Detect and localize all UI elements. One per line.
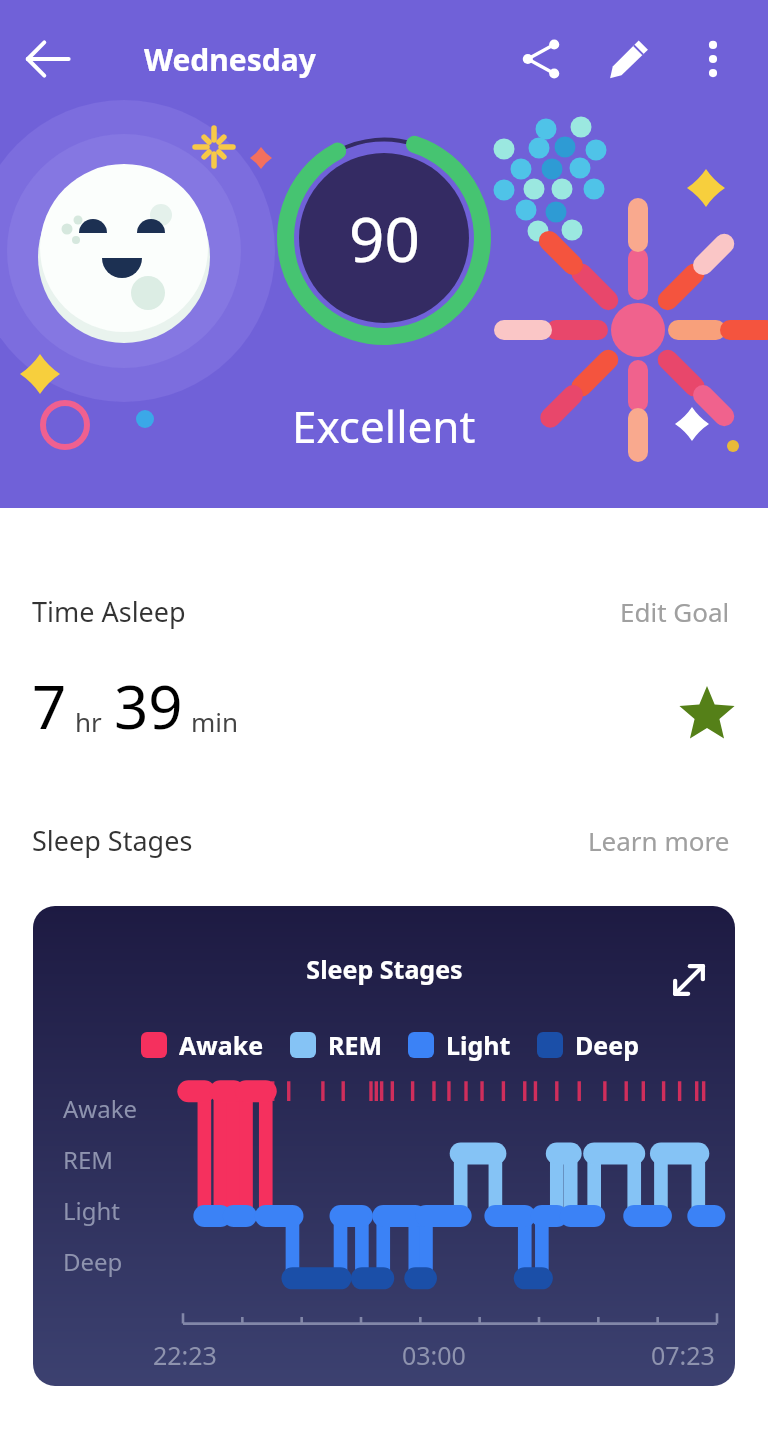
staticText: 22:23 <box>153 1338 217 1372</box>
staticText: Sleep Stages <box>306 952 463 986</box>
staticText: Deep <box>575 1028 639 1062</box>
staticText: Edit Goal <box>620 594 730 629</box>
staticText: Awake <box>63 1092 138 1125</box>
button[interactable]: Edit <box>592 22 666 96</box>
button[interactable]: Back <box>0 11 96 107</box>
button[interactable]: Learn more <box>582 817 736 864</box>
button[interactable]: More options <box>676 22 750 96</box>
staticText: Sleep Stages <box>32 822 193 859</box>
staticText: 7 <box>32 665 67 747</box>
staticText: Time Asleep <box>32 593 186 630</box>
staticText: Awake <box>179 1028 264 1062</box>
staticText: 07:23 <box>651 1338 715 1372</box>
button[interactable]: Sleep Stages <box>33 906 735 1386</box>
staticText: REM <box>63 1143 114 1176</box>
staticText: 39 <box>114 665 183 747</box>
button[interactable]: Expand chart <box>659 950 719 1010</box>
staticText: min <box>191 704 239 739</box>
staticText: Learn more <box>588 823 730 858</box>
staticText: 03:00 <box>402 1338 466 1372</box>
staticText: Deep <box>63 1245 123 1278</box>
staticText: Light <box>63 1194 121 1227</box>
staticText: Excellent <box>292 396 476 456</box>
staticText: Wednesday <box>144 39 316 80</box>
staticText: hr <box>75 704 102 739</box>
staticText: Light <box>446 1028 511 1062</box>
button[interactable]: Share <box>504 22 578 96</box>
button[interactable]: Edit Goal <box>614 588 736 635</box>
staticText: REM <box>328 1028 382 1062</box>
staticText: 90 <box>349 196 420 280</box>
